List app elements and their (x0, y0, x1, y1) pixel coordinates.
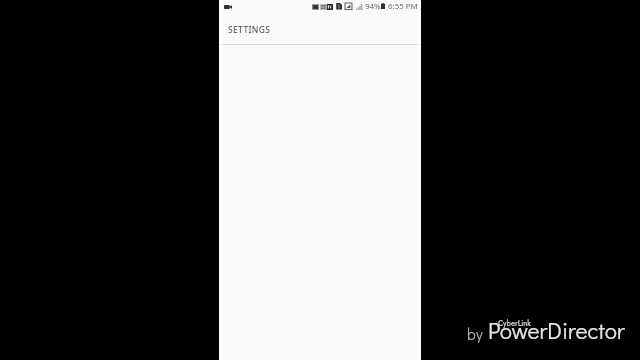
staticText: by (467, 324, 483, 344)
staticText: 6:55 PM (388, 1, 418, 12)
other: Notifications (320, 4, 333, 10)
staticText: SETTINGS (228, 24, 271, 36)
other: Notification (312, 4, 319, 10)
other: Screen recording in progress (224, 5, 232, 9)
other: Mobile data (345, 3, 352, 10)
other: Battery 94 percent (381, 3, 385, 9)
other: SIM card 1 (336, 3, 342, 10)
staticText: PowerDirector (488, 315, 625, 345)
other: Signal strength (356, 4, 363, 10)
button[interactable]: SETTINGS (219, 18, 421, 44)
staticText: CyberLink (498, 318, 531, 329)
staticText: 94% (365, 1, 381, 12)
